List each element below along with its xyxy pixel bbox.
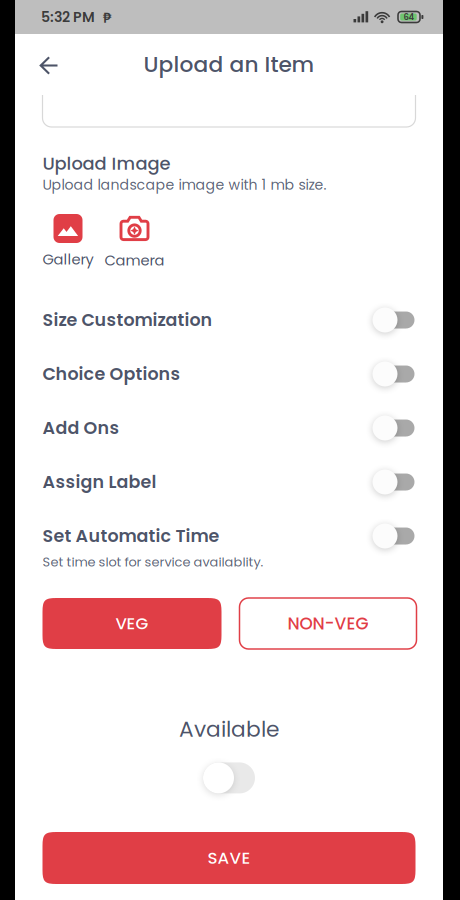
staticText: Set Automatic Time — [42, 524, 219, 548]
staticText: Assign Label — [42, 470, 156, 494]
staticText: 5:32 PM — [41, 7, 95, 27]
button[interactable]: VEG — [42, 598, 221, 649]
staticText: Add Ons — [42, 416, 119, 440]
staticText: Available — [179, 714, 279, 744]
button[interactable]: SAVE — [42, 832, 415, 884]
staticText: Upload Image — [42, 151, 170, 176]
staticText: NON-VEG — [287, 612, 368, 635]
staticText: Set time slot for service availablity. — [42, 553, 263, 571]
staticText: 64 — [403, 11, 414, 23]
staticText: Size Customization — [42, 308, 212, 332]
staticText: Gallery — [42, 249, 93, 269]
button[interactable]: Camera — [104, 214, 164, 270]
staticText: Upload landscape image with 1 mb size. — [42, 175, 326, 195]
button[interactable]: Size Customization — [42, 293, 415, 347]
staticText: ₱ — [95, 7, 111, 27]
button[interactable]: Available — [203, 762, 255, 793]
button[interactable]: Set Automatic Time — [42, 509, 415, 563]
staticText: Choice Options — [42, 362, 180, 386]
button[interactable]: Assign Label — [42, 455, 415, 509]
button[interactable]: Gallery — [42, 214, 93, 269]
staticText: Upload an Item — [143, 49, 314, 80]
button[interactable]: Back — [26, 41, 72, 87]
staticText: VEG — [115, 612, 148, 635]
staticText: SAVE — [207, 846, 250, 870]
button[interactable]: Choice Options — [42, 347, 415, 401]
staticText: Camera — [104, 250, 164, 270]
button[interactable]: NON-VEG — [239, 598, 416, 649]
button[interactable]: Add Ons — [42, 401, 415, 455]
